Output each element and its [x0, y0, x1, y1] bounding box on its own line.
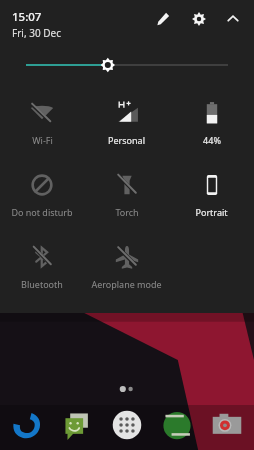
- staticText: Do not disturb: [11, 206, 73, 218]
- staticText: Fri, 30 Dec: [12, 26, 61, 40]
- button[interactable]: Bluetooth: [0, 236, 84, 308]
- button[interactable]: Phone: [6, 404, 48, 446]
- button[interactable]: Messages: [56, 404, 98, 446]
- button[interactable]: Brightness: [0, 48, 254, 82]
- button[interactable]: Do not disturb: [0, 164, 84, 236]
- staticText: 44%: [203, 134, 221, 146]
- staticText: Torch: [115, 206, 139, 218]
- staticText: Wi-Fi: [32, 134, 53, 146]
- staticText: Aeroplane mode: [91, 278, 162, 290]
- button[interactable]: Hangouts: [156, 404, 198, 446]
- button[interactable]: Camera: [206, 404, 248, 446]
- button[interactable]: Settings: [186, 6, 212, 32]
- button[interactable]: 44%: [169, 92, 254, 164]
- staticText: Personal: [108, 134, 145, 146]
- staticText: Portrait: [195, 206, 228, 218]
- button[interactable]: Collapse: [220, 6, 246, 32]
- button[interactable]: Apps: [106, 404, 148, 446]
- button[interactable]: Personal: [84, 92, 169, 164]
- staticText: Bluetooth: [21, 278, 63, 290]
- button[interactable]: Portrait: [169, 164, 254, 236]
- button[interactable]: Torch: [84, 164, 169, 236]
- button[interactable]: Aeroplane mode: [84, 236, 169, 308]
- staticText: 15:07: [12, 9, 42, 25]
- button[interactable]: Wi-Fi: [0, 92, 84, 164]
- button[interactable]: Edit: [150, 6, 176, 32]
